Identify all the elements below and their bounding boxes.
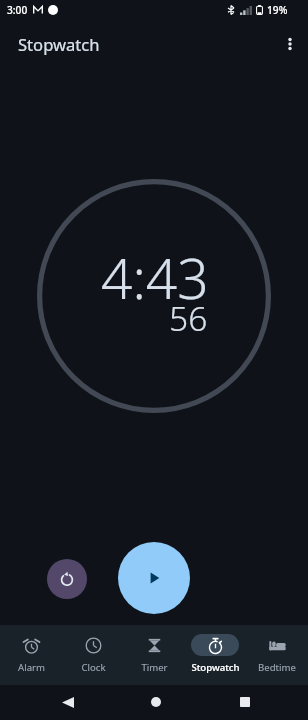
staticText: Alarm: [18, 661, 45, 674]
button[interactable]: Start: [118, 542, 190, 614]
staticText: Stopwatch: [191, 661, 240, 674]
button[interactable]: Reset: [47, 559, 87, 599]
staticText: 4:43: [101, 240, 209, 315]
button[interactable]: More options: [273, 27, 307, 61]
button[interactable]: Clock: [63, 625, 123, 685]
button[interactable]: Recents: [230, 687, 260, 717]
button[interactable]: Alarm: [1, 625, 61, 685]
button[interactable]: Bedtime: [247, 625, 307, 685]
button[interactable]: Back: [53, 687, 83, 717]
staticText: Bedtime: [258, 661, 296, 674]
staticText: Timer: [141, 661, 168, 674]
staticText: 3:00: [7, 3, 28, 17]
staticText: 19%: [267, 3, 288, 17]
button[interactable]: Home: [141, 687, 171, 717]
staticText: Stopwatch: [18, 33, 100, 56]
staticText: 56: [169, 295, 208, 341]
button[interactable]: Timer: [124, 625, 184, 685]
staticText: Clock: [81, 661, 106, 674]
button[interactable]: Stopwatch: [185, 625, 245, 685]
